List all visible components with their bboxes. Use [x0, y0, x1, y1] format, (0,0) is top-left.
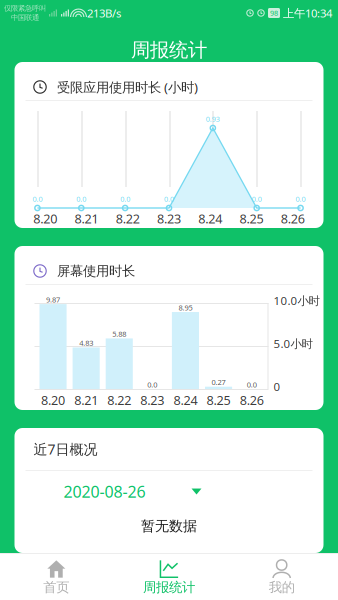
staticText: 98	[270, 8, 278, 18]
staticText: 我的	[269, 579, 295, 596]
staticText: 8.26	[281, 210, 305, 227]
staticText: 2020-08-26	[63, 481, 145, 502]
staticText: 8.26	[240, 391, 264, 409]
staticText: 8.24	[198, 210, 222, 227]
staticText: 周报统计	[143, 579, 195, 596]
staticText: 8.23	[140, 391, 164, 409]
staticText: 10.0小时	[273, 293, 319, 308]
staticText: 0.0	[32, 194, 42, 204]
staticText: 8.25	[207, 391, 231, 409]
staticText: 周报统计	[131, 38, 207, 62]
staticText: 0.0	[120, 194, 130, 204]
staticText: 5.88	[112, 329, 126, 339]
button[interactable]: 我的	[225, 553, 338, 600]
staticText: 0.0	[252, 194, 262, 204]
staticText: 仅限紧急呼叫	[4, 4, 46, 13]
staticText: 受限应用使用时长 (小时)	[57, 78, 198, 96]
staticText: 中国联通	[11, 13, 39, 22]
staticText: 暂无数据	[141, 517, 197, 535]
button[interactable]: 首页	[0, 553, 113, 600]
button[interactable]: 2020-08-26	[14, 471, 323, 512]
staticText: 4.83	[79, 338, 93, 348]
staticText: 8.23	[157, 210, 181, 227]
staticText: 8.22	[107, 391, 131, 409]
staticText: 0.27	[212, 377, 226, 387]
staticText: 0.0	[296, 194, 306, 204]
staticText: 9.87	[46, 294, 60, 305]
staticText: 8.24	[173, 391, 197, 409]
staticText: 上午10:34	[283, 5, 332, 21]
staticText: 213B/s	[87, 5, 121, 21]
staticText: 8.21	[74, 210, 98, 227]
button[interactable]: 周报统计	[113, 553, 225, 600]
staticText: 8.22	[116, 210, 140, 227]
staticText: 8.25	[240, 210, 264, 227]
staticText: 0.0	[247, 379, 257, 390]
staticText: 8.95	[178, 302, 192, 313]
staticText: 8.20	[41, 391, 65, 409]
staticText: 8.20	[33, 210, 57, 227]
staticText: 0.93	[206, 114, 220, 124]
staticText: 0.0	[164, 194, 174, 204]
staticText: 5.0小时	[273, 336, 312, 351]
staticText: 首页	[43, 579, 69, 596]
staticText: 8.21	[74, 391, 98, 409]
staticText: 近7日概况	[33, 439, 97, 459]
staticText: 0	[273, 379, 280, 394]
staticText: 0.0	[76, 194, 86, 204]
staticText: 0.0	[147, 379, 157, 390]
staticText: 屏幕使用时长	[57, 263, 135, 279]
